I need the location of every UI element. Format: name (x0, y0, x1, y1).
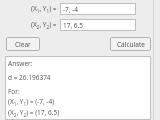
staticText: (X2, Y2) = (17, 6.5) (8, 108, 60, 118)
button[interactable]: -7, -4 (60, 3, 136, 15)
staticText: For: (8, 87, 20, 96)
staticText: Clear (15, 40, 31, 49)
staticText: (X1, Y1) = (31, 4, 57, 14)
button[interactable]: 17, 6.5 (60, 19, 136, 31)
button[interactable]: Answer: (5, 56, 151, 120)
staticText: Answer: (8, 59, 33, 68)
staticText: (X1, Y1) = (-7, -4) (8, 97, 55, 107)
staticText: -7, -4 (63, 5, 79, 14)
button[interactable]: Clear (6, 37, 40, 51)
staticText: (X2, Y2) = (31, 20, 57, 30)
button[interactable]: Calculate (110, 37, 151, 51)
staticText: d = 26.196374 (8, 73, 51, 82)
staticText: Calculate (117, 40, 145, 49)
staticText: 17, 6.5 (63, 21, 84, 30)
